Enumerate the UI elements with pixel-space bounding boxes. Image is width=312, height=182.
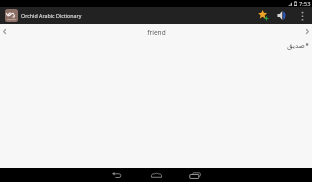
staticText: صديق xyxy=(287,41,305,49)
button[interactable]: Next entry xyxy=(302,26,312,36)
button[interactable]: More options xyxy=(294,7,310,24)
button[interactable]: Recent apps xyxy=(184,168,206,182)
staticText: 7:53 xyxy=(299,0,311,7)
button[interactable]: Add to favourites xyxy=(255,7,272,24)
staticText: Orchid Arabic Dictionary xyxy=(21,12,82,19)
staticText: friend xyxy=(147,28,166,37)
button[interactable]: Pronounce xyxy=(274,7,291,24)
button[interactable]: Back xyxy=(106,168,128,182)
button[interactable]: App icon xyxy=(5,9,18,22)
button[interactable]: Home xyxy=(145,168,167,182)
button[interactable]: Previous entry xyxy=(0,26,9,36)
